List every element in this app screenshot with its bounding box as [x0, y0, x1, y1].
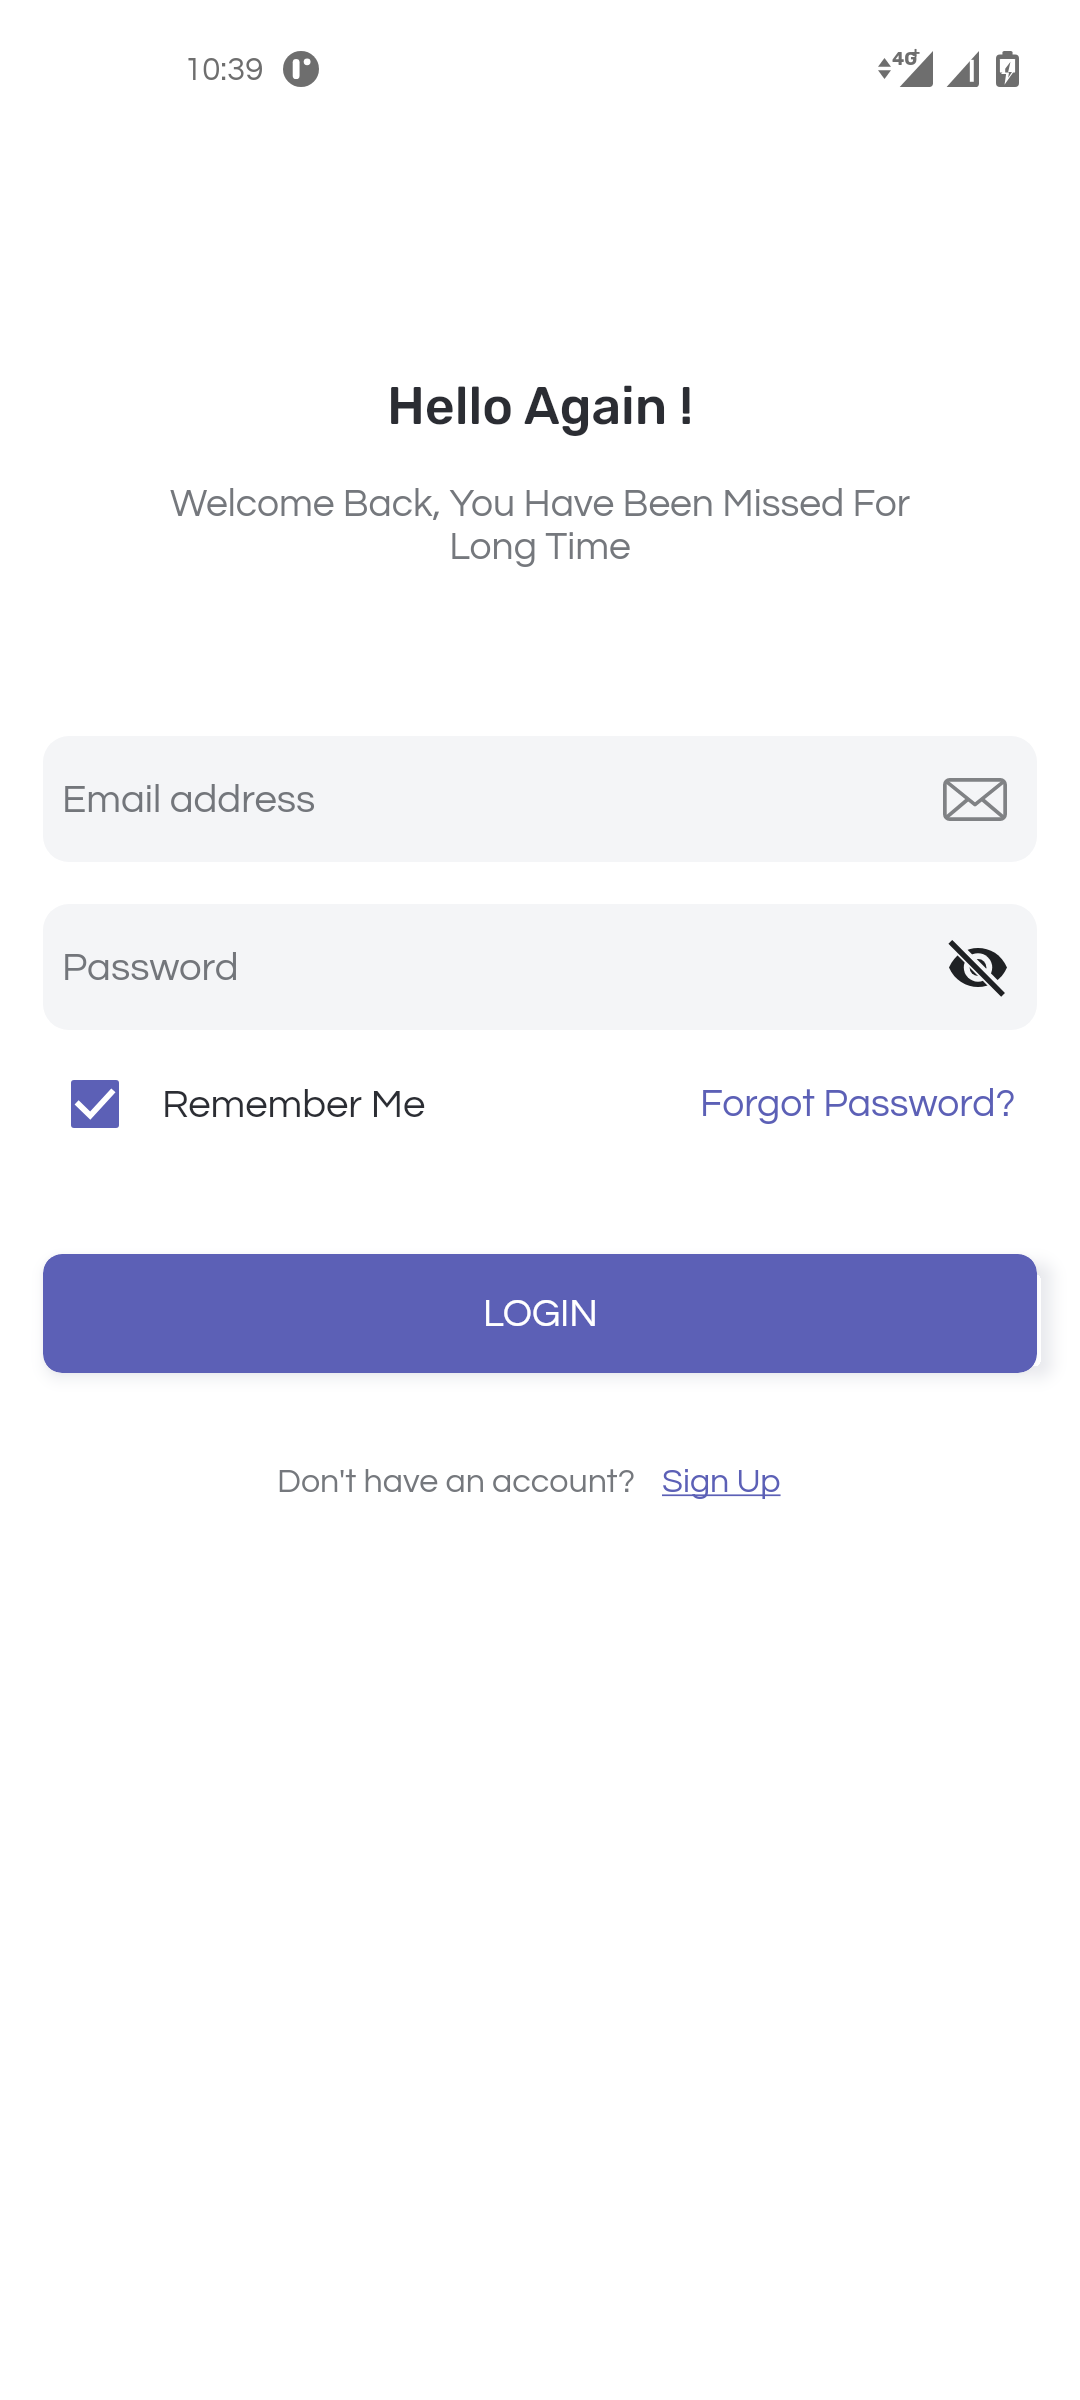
staticText: + — [911, 44, 921, 62]
staticText: Remember Me — [162, 1084, 426, 1125]
staticText: LOGIN — [483, 1294, 598, 1334]
staticText: 4G — [892, 48, 918, 69]
staticText: Forgot Password? — [700, 1084, 1016, 1124]
other: Show password — [949, 943, 1007, 992]
button[interactable]: Remember Me — [71, 1080, 426, 1128]
button[interactable]: Forgot Password? — [700, 1084, 1016, 1124]
staticText: Welcome Back, You Have Been Missed For L… — [128, 484, 952, 567]
button[interactable]: Password — [43, 904, 1037, 1030]
staticText: 10:39 — [184, 53, 264, 87]
button[interactable]: Sign Up — [662, 1464, 781, 1499]
button[interactable]: Email address — [43, 736, 1037, 862]
staticText: Email address — [62, 779, 316, 820]
staticText: Hello Again ! — [0, 375, 1080, 437]
staticText: Don't have an account? — [277, 1464, 636, 1499]
staticText: Sign Up — [662, 1464, 781, 1499]
other: Email — [943, 778, 1007, 821]
button[interactable]: LOGIN — [43, 1254, 1037, 1373]
staticText: Password — [62, 947, 239, 988]
